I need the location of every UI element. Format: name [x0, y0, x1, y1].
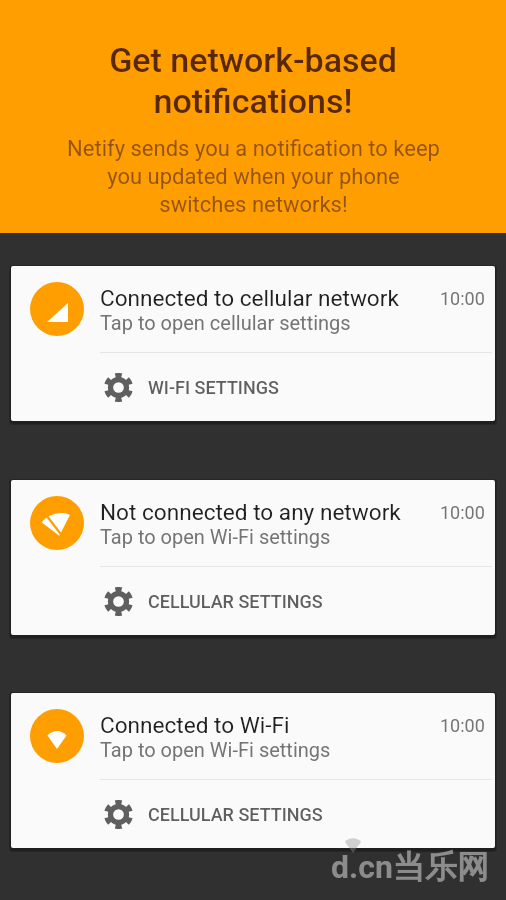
staticText: d.cn当乐网 [331, 847, 489, 887]
button[interactable]: WI-FI SETTINGS [104, 353, 495, 421]
staticText: CELLULAR SETTINGS [148, 804, 323, 825]
staticText: 10:00 [440, 502, 485, 523]
staticText: Tap to open cellular settings [100, 311, 351, 334]
staticText: Netify sends you a notification to keep … [67, 136, 440, 218]
staticText: 10:00 [440, 288, 485, 309]
button[interactable]: Wi-Fi connected [30, 709, 84, 763]
button[interactable]: No network connection [11, 480, 495, 635]
button[interactable]: Wi-Fi connected [11, 693, 495, 848]
staticText: 10:00 [440, 715, 485, 736]
button[interactable]: Cellular network connected [30, 282, 84, 336]
staticText: Connected to Wi-Fi [100, 712, 290, 738]
staticText: Not connected to any network [100, 499, 401, 525]
button[interactable]: CELLULAR SETTINGS [104, 780, 495, 848]
staticText: Get network-based notifications! [109, 40, 397, 122]
staticText: Tap to open Wi-Fi settings [100, 525, 331, 548]
staticText: Tap to open Wi-Fi settings [100, 738, 331, 761]
staticText: WI-FI SETTINGS [148, 377, 279, 398]
button[interactable]: CELLULAR SETTINGS [104, 567, 495, 635]
button[interactable]: Cellular network connected [11, 266, 495, 421]
button[interactable]: No network connection [30, 496, 84, 550]
staticText: Connected to cellular network [100, 285, 399, 311]
staticText: CELLULAR SETTINGS [148, 591, 323, 612]
